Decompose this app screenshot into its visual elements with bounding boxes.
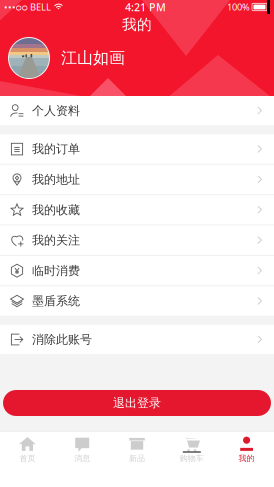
button[interactable]: 新品 [110,431,164,463]
button[interactable]: 临时消费 [0,256,274,285]
button[interactable]: 消除此账号 [0,325,274,354]
staticText: 江山如画 [61,48,125,68]
staticText: 个人资料 [32,103,80,118]
button[interactable]: 我的收藏 [0,195,274,225]
button[interactable]: 我的订单 [0,134,274,164]
button[interactable]: 退出登录 [3,390,271,416]
staticText: 购物车 [180,453,204,463]
staticText: 我的收藏 [32,202,80,217]
button[interactable]: 我的 [219,431,274,463]
button[interactable]: 我的地址 [0,165,274,194]
staticText: 我的订单 [32,142,80,156]
staticText: 我的关注 [32,233,80,248]
staticText: 我的 [239,453,255,463]
staticText: 首页 [19,453,35,463]
staticText: •••ᴑᴑ BELL [4,1,51,13]
button[interactable]: 墨盾系统 [0,286,274,316]
staticText: 临时消费 [32,263,80,278]
staticText: 退出登录 [113,396,161,410]
staticText: 100% [227,1,250,13]
button[interactable]: 个人资料 [0,96,274,125]
staticText: 我的 [122,15,152,33]
staticText: 消除此账号 [32,332,92,347]
button[interactable]: 首页 [0,431,55,463]
button[interactable]: 消息 [55,431,110,463]
button[interactable]: 我的关注 [0,226,274,255]
staticText: 4:21 PM [125,0,166,14]
button[interactable]: 购物车 [164,431,219,463]
staticText: 墨盾系统 [32,294,80,308]
staticText: 新品 [129,453,145,463]
staticText: 我的地址 [32,172,80,187]
staticText: 消息 [74,453,90,463]
